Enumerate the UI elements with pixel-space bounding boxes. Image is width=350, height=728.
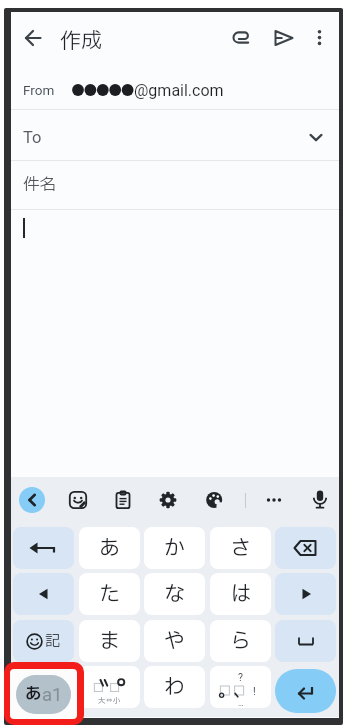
button[interactable] xyxy=(11,70,339,109)
button[interactable]: ま xyxy=(79,620,140,662)
staticText: To xyxy=(23,128,42,147)
button[interactable] xyxy=(13,573,74,615)
button[interactable] xyxy=(269,24,297,52)
button[interactable] xyxy=(19,487,45,513)
button[interactable] xyxy=(11,161,339,209)
staticText: 記 xyxy=(45,630,61,652)
button[interactable]: や xyxy=(144,620,205,662)
staticText: ! xyxy=(253,685,256,697)
staticText: @gmail.com xyxy=(134,81,224,100)
staticText: ? xyxy=(238,671,243,683)
staticText: わ xyxy=(164,672,185,703)
button[interactable] xyxy=(275,669,336,713)
button[interactable] xyxy=(275,620,336,662)
button[interactable] xyxy=(13,666,74,708)
staticText: From xyxy=(23,82,55,98)
staticText: … xyxy=(238,698,244,708)
button[interactable] xyxy=(159,491,177,509)
staticText: あ xyxy=(25,682,42,707)
button[interactable] xyxy=(11,110,339,160)
button[interactable] xyxy=(308,24,332,52)
button[interactable]: さ xyxy=(210,527,271,569)
button[interactable]: ? xyxy=(210,666,271,708)
button[interactable]: ら xyxy=(210,620,271,662)
staticText: や xyxy=(164,626,185,657)
button[interactable] xyxy=(205,491,224,509)
button[interactable] xyxy=(275,573,336,615)
staticText: 件名 xyxy=(23,173,56,197)
button[interactable] xyxy=(310,489,330,511)
button[interactable]: 大⇔小 xyxy=(79,666,140,708)
button[interactable]: 記 xyxy=(13,620,74,662)
staticText: ら xyxy=(230,626,251,657)
button[interactable]: た xyxy=(79,573,140,615)
button[interactable] xyxy=(263,490,285,510)
button[interactable]: な xyxy=(144,573,205,615)
staticText: a1 xyxy=(42,684,63,706)
button[interactable] xyxy=(19,24,47,52)
button[interactable]: は xyxy=(210,573,271,615)
button[interactable]: あ xyxy=(79,527,140,569)
staticText: は xyxy=(230,579,251,610)
button[interactable] xyxy=(228,24,256,52)
staticText: か xyxy=(164,533,185,564)
button[interactable] xyxy=(275,527,336,569)
button[interactable]: あ xyxy=(10,669,77,719)
staticText: ま xyxy=(99,626,120,657)
button[interactable]: か xyxy=(144,527,205,569)
staticText: あ xyxy=(99,533,120,564)
staticText: な xyxy=(164,579,185,610)
button[interactable]: わ xyxy=(144,666,205,708)
button[interactable] xyxy=(13,527,74,569)
staticText: さ xyxy=(230,533,251,564)
button[interactable] xyxy=(114,490,132,510)
staticText: 作成 xyxy=(60,26,102,50)
button[interactable] xyxy=(68,490,88,510)
staticText: 大⇔小 xyxy=(98,695,121,705)
staticText: た xyxy=(99,579,120,610)
